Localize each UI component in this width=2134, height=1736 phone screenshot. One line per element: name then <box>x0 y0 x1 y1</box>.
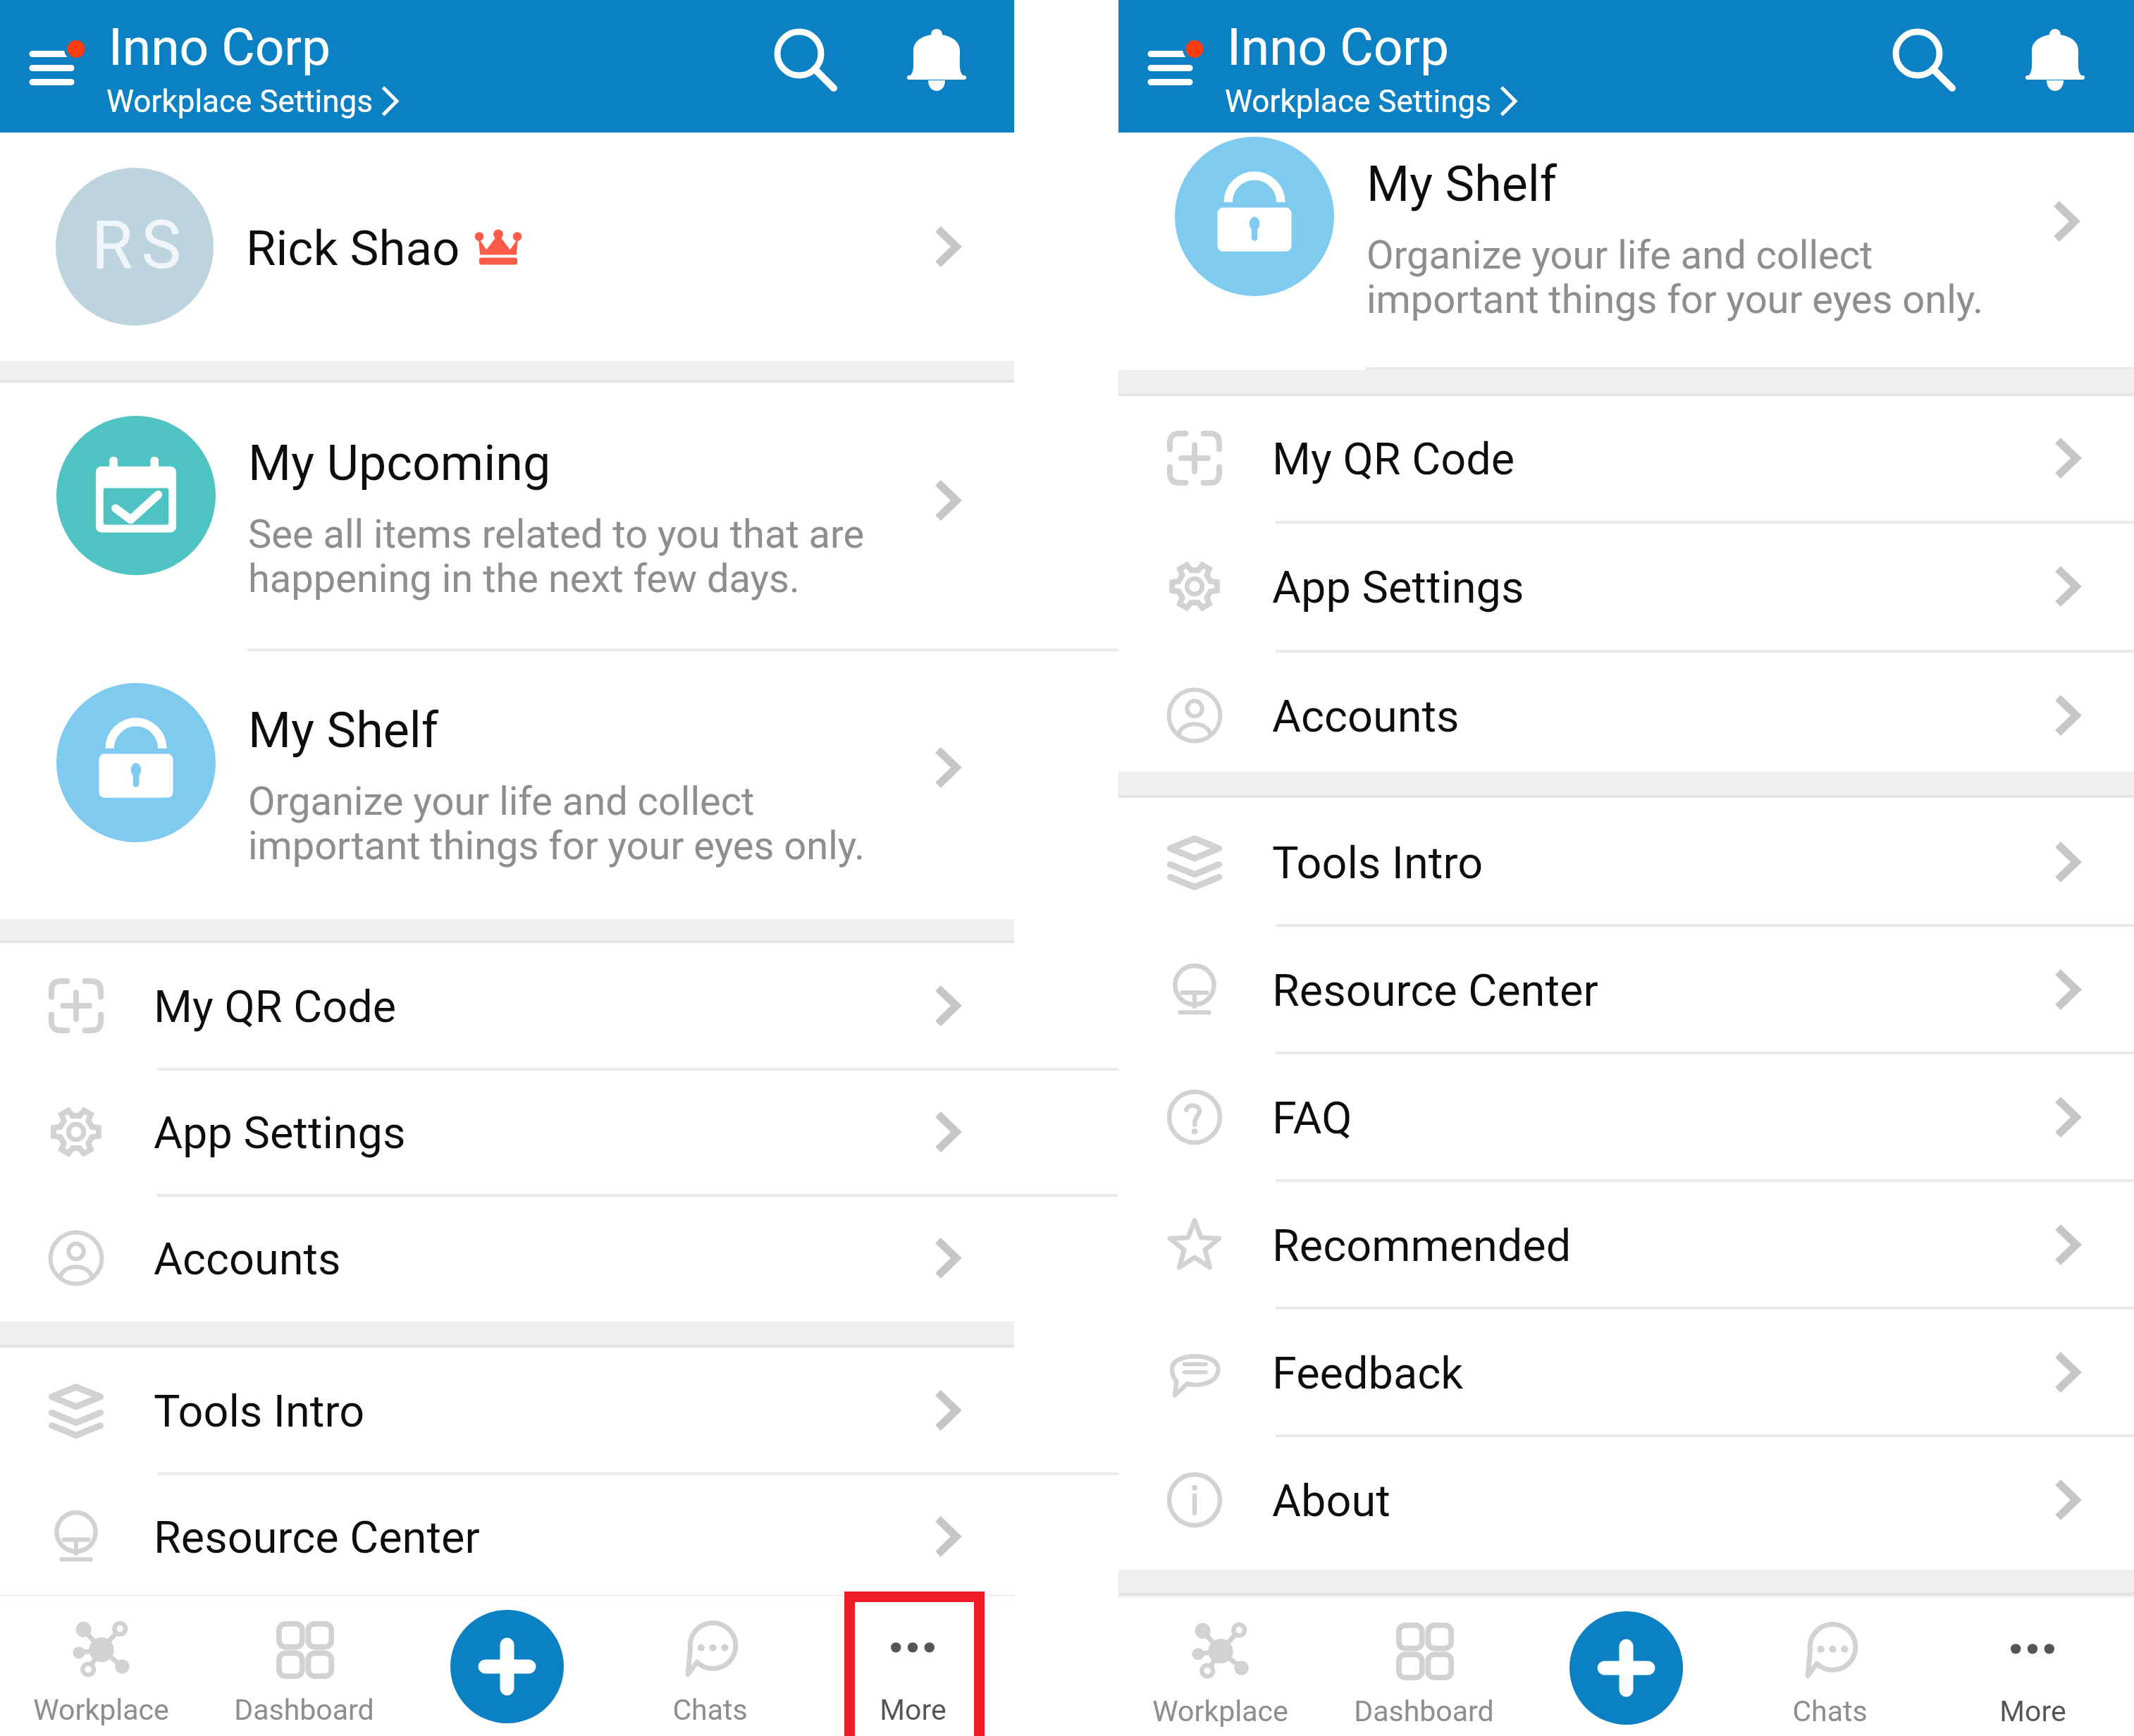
button[interactable]: Workplace Settings <box>1225 83 1517 120</box>
button[interactable]: More <box>811 1594 1014 1736</box>
staticText: Recommended <box>1272 1220 1572 1272</box>
staticText: Accounts <box>1272 691 1460 743</box>
staticText: My Shelf <box>1367 155 1558 213</box>
button[interactable]: Notifications <box>2002 14 2108 118</box>
button[interactable]: Resource Center <box>1118 927 2134 1052</box>
button[interactable]: Search <box>758 14 864 118</box>
staticText: More <box>880 1693 946 1727</box>
staticText: Workplace <box>1152 1694 1288 1728</box>
staticText: Resource Center <box>154 1512 480 1564</box>
button[interactable]: Search <box>1877 14 1982 118</box>
button[interactable]: Accounts <box>0 1195 1014 1320</box>
staticText: My Upcoming <box>248 434 551 492</box>
staticText: App Settings <box>154 1107 406 1159</box>
button[interactable]: Dashboard <box>202 1594 405 1736</box>
button[interactable]: Workplace <box>1118 1596 1322 1736</box>
button[interactable]: My QR Code <box>1118 395 2134 520</box>
staticText: Tools Intro <box>154 1386 365 1438</box>
staticText: Chats <box>1792 1694 1868 1728</box>
button[interactable]: My Shelf <box>0 650 1014 919</box>
button[interactable]: My Shelf <box>1118 104 2134 370</box>
button[interactable]: Resource Center <box>0 1474 1014 1599</box>
button[interactable]: Chats <box>608 1594 811 1736</box>
staticText: About <box>1272 1475 1390 1527</box>
staticText: Inno Corp <box>109 17 331 78</box>
button[interactable]: Create <box>450 1610 564 1723</box>
staticText: FAQ <box>1272 1092 1352 1145</box>
staticText: Inno Corp <box>1227 17 1450 78</box>
staticText: Dashboard <box>1354 1694 1494 1728</box>
button[interactable]: My Upcoming <box>0 383 1014 650</box>
staticText: Resource Center <box>1272 965 1598 1017</box>
staticText: More <box>1999 1694 2066 1728</box>
staticText: My Shelf <box>248 701 439 759</box>
button[interactable]: Create <box>1569 1611 1683 1725</box>
staticText: Dashboard <box>234 1693 374 1727</box>
button[interactable]: FAQ <box>1118 1054 2134 1179</box>
button[interactable]: Feedback <box>1118 1310 2134 1434</box>
button[interactable]: My QR Code <box>0 943 1014 1068</box>
button[interactable]: Tools Intro <box>1118 799 2134 924</box>
staticText: My QR Code <box>154 981 397 1033</box>
button[interactable]: App Settings <box>1118 524 2134 648</box>
staticText: Rick Shao <box>246 220 460 277</box>
staticText: Organize your life and collect important… <box>248 778 865 869</box>
button[interactable]: About <box>1118 1437 2134 1562</box>
staticText: See all items related to you that are ha… <box>248 511 865 602</box>
staticText: Accounts <box>154 1233 341 1286</box>
button[interactable]: App Settings <box>0 1069 1014 1194</box>
staticText: My QR Code <box>1272 433 1515 486</box>
button[interactable]: More <box>1931 1596 2134 1736</box>
button[interactable]: Chats <box>1728 1596 1931 1736</box>
button[interactable]: Tools Intro <box>0 1348 1014 1472</box>
staticText: Workplace <box>33 1693 169 1727</box>
staticText: Organize your life and collect important… <box>1367 232 1984 323</box>
button[interactable]: Dashboard <box>1322 1596 1525 1736</box>
button[interactable]: Workplace <box>0 1594 202 1736</box>
button[interactable]: Notifications <box>884 14 989 118</box>
staticText: Tools Intro <box>1272 837 1484 889</box>
button[interactable]: Accounts <box>1118 653 2134 777</box>
staticText: Chats <box>672 1693 748 1727</box>
staticText: Feedback <box>1272 1348 1464 1400</box>
button[interactable]: RS <box>0 133 1014 361</box>
staticText: Workplace Settings <box>1225 83 1491 120</box>
button[interactable]: Workplace Settings <box>106 83 399 120</box>
button[interactable]: Recommended <box>1118 1182 2134 1307</box>
button[interactable]: Menu <box>10 13 97 96</box>
button[interactable]: Menu <box>1128 13 1216 96</box>
staticText: Workplace Settings <box>106 83 373 120</box>
staticText: RS <box>92 206 190 284</box>
staticText: App Settings <box>1272 562 1524 614</box>
